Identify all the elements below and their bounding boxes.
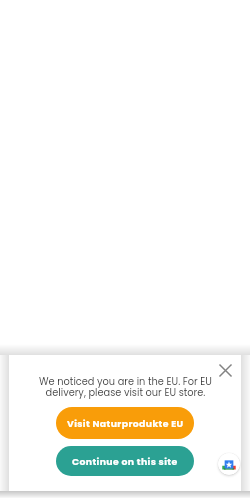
button[interactable]: Close [214, 359, 236, 381]
button[interactable]: Open shopping assistant [218, 453, 240, 475]
staticText: Continue on this site [72, 455, 178, 468]
staticText: Visit Naturprodukte EU [67, 417, 184, 430]
staticText: We noticed you are in the EU. For EU del… [39, 375, 212, 399]
button[interactable]: Continue on this site [56, 446, 194, 476]
button[interactable]: Visit Naturprodukte EU [56, 407, 194, 439]
